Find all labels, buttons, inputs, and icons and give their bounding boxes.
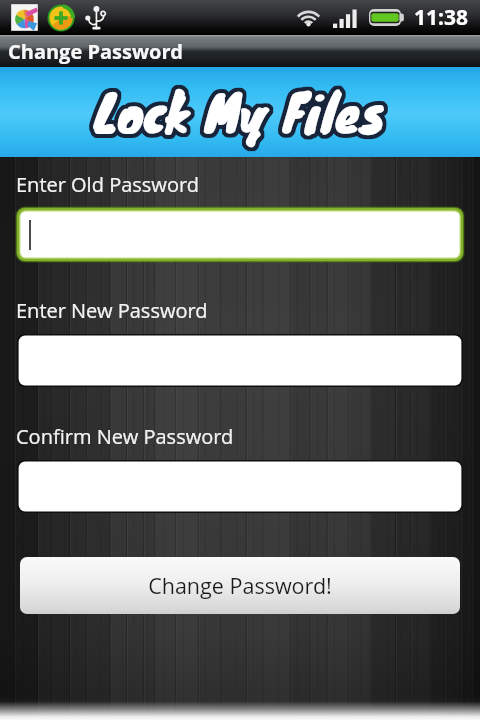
staticText: Confirm New Password	[16, 423, 234, 450]
staticText: Lock My Files	[90, 71, 382, 149]
staticText: Lock My Files	[96, 77, 388, 155]
staticText: Lock My Files	[98, 71, 390, 149]
staticText: Lock My Files	[92, 69, 384, 147]
staticText: Lock My Files	[97, 70, 389, 148]
staticText: Lock My Files	[98, 75, 390, 153]
staticText: Change Password	[8, 38, 183, 65]
staticText: 11:38	[414, 3, 468, 32]
staticText: Lock My Files	[91, 76, 383, 154]
button[interactable]	[17, 208, 463, 261]
staticText: Change Password!	[148, 571, 332, 600]
staticText: Lock My Files	[90, 75, 382, 153]
staticText: Lock My Files	[91, 70, 383, 148]
staticText: Lock My Files	[97, 76, 389, 154]
staticText: Lock My Files	[94, 77, 386, 155]
staticText: Lock My Files	[94, 69, 386, 147]
other: Market update	[46, 3, 76, 33]
other: USB connected	[83, 5, 107, 31]
staticText: Lock My Files	[94, 73, 386, 151]
button[interactable]: Change Password!	[20, 557, 460, 614]
button[interactable]	[17, 334, 463, 387]
staticText: Lock My Files	[90, 73, 382, 151]
staticText: Lock My Files	[98, 73, 390, 151]
staticText: Lock My Files	[97, 77, 389, 155]
staticText: Lock My Files	[96, 69, 388, 147]
staticText: Enter Old Password	[16, 171, 200, 198]
staticText: Enter New Password	[16, 297, 208, 324]
button[interactable]	[17, 460, 463, 513]
staticText: Lock My Files	[92, 77, 384, 155]
other: Gallery	[9, 2, 40, 33]
